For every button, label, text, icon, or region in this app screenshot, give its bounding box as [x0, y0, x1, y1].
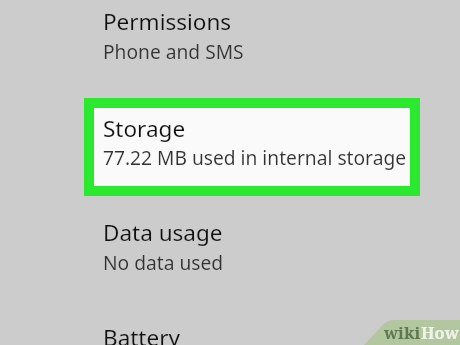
staticText: Permissions: [103, 6, 232, 37]
button[interactable]: Storage: [94, 108, 410, 186]
staticText: Phone and SMS: [103, 38, 244, 64]
staticText: How: [421, 321, 459, 343]
staticText: 77.22 MB used in internal storage: [103, 144, 407, 170]
button[interactable]: Data usage: [0, 217, 460, 303]
staticText: Battery: [103, 322, 180, 345]
button[interactable]: Permissions: [0, 6, 460, 92]
staticText: wiki: [384, 321, 421, 343]
staticText: Storage: [103, 113, 186, 144]
staticText: No data used: [103, 249, 224, 275]
staticText: Data usage: [103, 217, 223, 248]
button[interactable]: Battery: [0, 322, 460, 345]
